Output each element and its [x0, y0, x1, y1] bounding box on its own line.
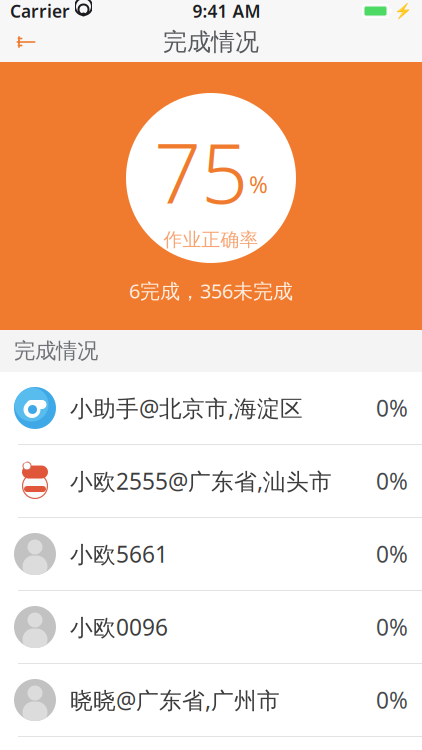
staticText: 6完成，356未完成: [129, 277, 293, 304]
staticText: 小欧5661: [70, 539, 168, 569]
button[interactable]: Back: [6, 22, 46, 62]
staticText: Carrier: [10, 0, 70, 22]
button[interactable]: 小欧2555@广东省,汕头市: [0, 445, 422, 518]
button[interactable]: 晓晓@广东省,广州市: [0, 664, 422, 737]
staticText: 0%: [376, 685, 408, 715]
staticText: 作业正确率: [163, 228, 258, 251]
button[interactable]: 小欧5661: [0, 518, 422, 591]
staticText: 小欧2555@广东省,汕头市: [70, 466, 332, 496]
staticText: 0%: [376, 466, 408, 496]
staticText: 9:41 AM: [192, 0, 260, 22]
staticText: 0%: [376, 612, 408, 642]
button[interactable]: 小欧0096: [0, 591, 422, 664]
staticText: 完成情况: [14, 338, 98, 364]
staticText: 完成情况: [163, 27, 259, 57]
staticText: 小助手@北京市,海淀区: [70, 393, 303, 423]
staticText: 0%: [376, 393, 408, 423]
staticText: 小欧0096: [70, 612, 168, 642]
staticText: 0%: [376, 539, 408, 569]
button[interactable]: 小助手@北京市,海淀区: [0, 372, 422, 445]
staticText: ⚡: [394, 3, 412, 19]
staticText: 晓晓@广东省,广州市: [70, 685, 280, 715]
staticText: 75: [154, 117, 248, 226]
staticText: %: [249, 169, 268, 200]
